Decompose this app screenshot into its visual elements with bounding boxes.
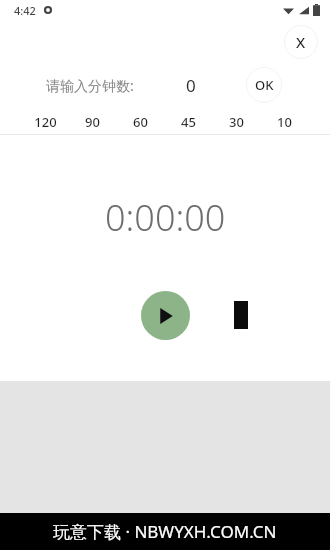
staticText: 4:42: [14, 3, 36, 18]
button[interactable]: 120: [22, 113, 69, 131]
button[interactable]: Start: [141, 291, 190, 340]
staticText: 10: [277, 113, 292, 131]
staticText: 45: [181, 113, 196, 131]
staticText: 0: [186, 74, 196, 97]
staticText: 60: [133, 113, 148, 131]
staticText: 90: [85, 113, 100, 131]
button[interactable]: 60: [116, 113, 164, 131]
button[interactable]: OK: [246, 67, 282, 103]
button[interactable]: Close: [284, 25, 318, 59]
button[interactable]: 90: [69, 113, 116, 131]
staticText: 玩意下载 · NBWYXH.COM.CN: [53, 520, 277, 543]
staticText: 120: [34, 113, 57, 131]
staticText: 请输入分钟数:: [46, 76, 134, 95]
staticText: OK: [255, 76, 274, 94]
button[interactable]: 10: [260, 113, 308, 131]
staticText: 30: [229, 113, 244, 131]
staticText: X: [296, 32, 306, 52]
button[interactable]: 30: [212, 113, 260, 131]
button[interactable]: 45: [164, 113, 212, 131]
staticText: 0:00:00: [105, 193, 226, 242]
